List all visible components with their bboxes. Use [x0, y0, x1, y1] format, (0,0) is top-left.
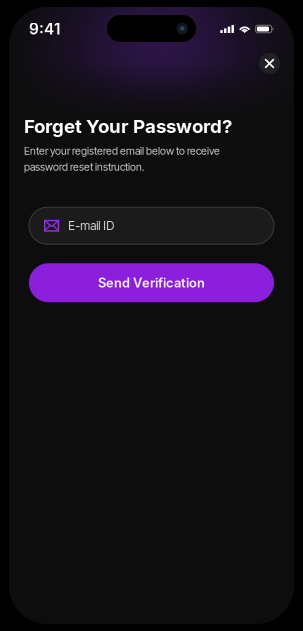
staticText: Forget Your Password? [24, 115, 232, 138]
staticText: E-mail ID [68, 218, 114, 233]
staticText: Send Verification [98, 275, 205, 290]
staticText: password reset instruction. [24, 160, 145, 173]
button[interactable]: Send Verification [29, 263, 274, 302]
staticText: Enter your registered email below to rec… [24, 145, 220, 157]
staticText: 9:41 [29, 20, 60, 38]
button[interactable]: Close [259, 53, 280, 74]
